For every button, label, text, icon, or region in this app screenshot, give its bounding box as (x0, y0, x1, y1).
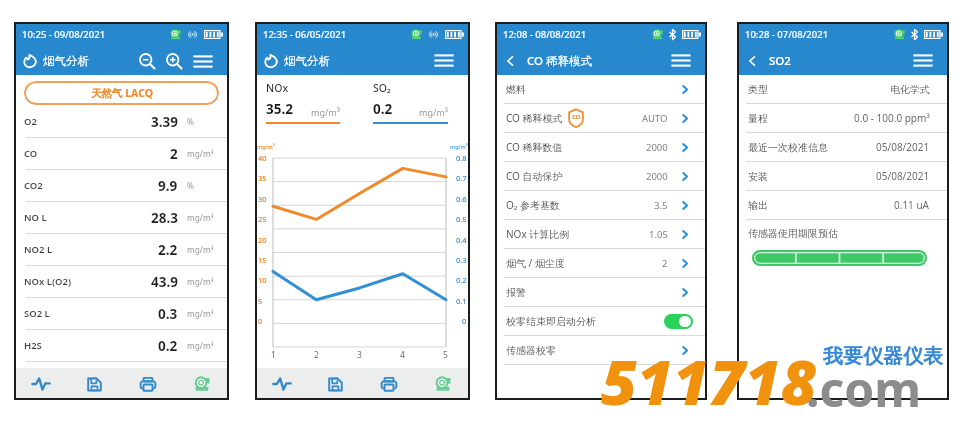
staticText: 0.2 (158, 337, 178, 355)
button[interactable]: NO2 L (14, 234, 229, 266)
button[interactable]: Print (121, 368, 175, 400)
staticText: 0.7 (456, 173, 467, 183)
button[interactable]: Trend (255, 368, 308, 400)
staticText: mg/m³ (450, 143, 468, 150)
button[interactable]: Sensor (175, 368, 229, 400)
button[interactable]: Sensor (416, 368, 470, 400)
button[interactable]: 传感器校零 (495, 336, 707, 365)
button[interactable]: CO 稀释模式 (495, 104, 707, 133)
staticText: mg/m³ (187, 212, 214, 223)
button[interactable]: Save (67, 368, 121, 400)
button[interactable]: Menu (913, 53, 933, 68)
staticText: 2 (314, 349, 319, 361)
button[interactable]: H2S (14, 330, 229, 362)
staticText: NOx L(O2) (24, 275, 72, 288)
button[interactable]: Save (308, 368, 362, 400)
button[interactable]: Menu (193, 54, 213, 69)
staticText: % (187, 180, 194, 191)
staticText: O2 (24, 115, 37, 128)
staticText: 30 (258, 194, 267, 204)
staticText: CO 自动保护 (506, 169, 563, 183)
staticText: 烟气 / 烟尘度 (506, 256, 565, 270)
staticText: CO 稀释模式 (506, 111, 563, 125)
staticText: 0 (258, 316, 263, 326)
button[interactable]: Menu (434, 53, 454, 68)
staticText: 35 (258, 173, 267, 183)
button[interactable]: Print (362, 368, 416, 400)
staticText: 10 (258, 275, 267, 285)
staticText: 5 (258, 296, 263, 306)
staticText: 0.3 (456, 255, 467, 265)
button[interactable]: 类型 (737, 75, 949, 104)
button[interactable]: 量程 (737, 104, 949, 133)
staticText: 0.5 (456, 214, 467, 224)
button[interactable]: Zoom in (166, 53, 182, 69)
staticText: 05/08/2021 (876, 169, 930, 183)
button[interactable]: CO2 (14, 170, 229, 202)
button[interactable]: O2 (14, 106, 229, 138)
staticText: AUTO (642, 112, 668, 125)
staticText: .com (806, 356, 922, 421)
button[interactable]: Menu (671, 53, 691, 68)
staticText: 0 (462, 316, 467, 326)
staticText: mg/m³ (311, 106, 340, 118)
button[interactable]: Back (746, 55, 758, 67)
button[interactable]: 烟气 / 烟尘度 (495, 249, 707, 278)
staticText: 烟气分析 (284, 54, 330, 68)
button[interactable]: 天然气 LACQ (24, 81, 219, 105)
staticText: 烟气分析 (43, 54, 89, 68)
button[interactable]: Back (504, 55, 516, 67)
staticText: mg/m³ (419, 106, 448, 118)
staticText: 最近一次校准信息 (748, 141, 828, 154)
staticText: SO2 L (24, 307, 50, 320)
button[interactable]: O₂ 参考基数 (495, 191, 707, 220)
staticText: 3.39 (151, 113, 178, 131)
staticText: 0.6 (456, 194, 467, 204)
staticText: CO2 (24, 179, 43, 192)
staticText: 0.8 (456, 153, 467, 163)
staticText: 15 (258, 255, 267, 265)
staticText: 1 (271, 349, 276, 361)
staticText: 25 (258, 214, 267, 224)
staticText: CO 稀释模式 (527, 53, 593, 69)
staticText: 0.11 uA (894, 198, 930, 212)
staticText: 2 (170, 145, 178, 163)
button[interactable]: 安装 (737, 162, 949, 191)
staticText: 1.05 (649, 228, 668, 241)
button[interactable]: 最近一次校准信息 (737, 133, 949, 162)
staticText: 28.3 (151, 209, 178, 227)
staticText: mg/m³ (187, 148, 214, 159)
staticText: 量程 (748, 112, 768, 125)
button[interactable]: 输出 (737, 191, 949, 220)
staticText: 传感器使用期限预估 (748, 227, 838, 240)
staticText: mg/m³ (187, 308, 214, 319)
button[interactable]: NO L (14, 202, 229, 234)
button[interactable]: CO 自动保护 (495, 162, 707, 191)
button[interactable]: Zoom out (139, 53, 155, 69)
staticText: 12:08 - 08/08/2021 (503, 28, 587, 41)
button[interactable]: 校零结束即启动分析 (495, 307, 707, 336)
staticText: 43.9 (151, 273, 178, 291)
staticText: O₂ 参考基数 (506, 198, 560, 212)
staticText: NO L (24, 211, 47, 224)
staticText: 12:35 - 06/05/2021 (263, 28, 347, 41)
button[interactable]: 报警 (495, 278, 707, 307)
button[interactable]: Trend (14, 368, 67, 400)
staticText: 10:25 - 09/08/2021 (22, 28, 106, 41)
staticText: 天然气 LACQ (91, 86, 153, 100)
staticText: NOx (266, 81, 289, 95)
staticText: 0.1 (456, 296, 467, 306)
button[interactable]: SO2 L (14, 298, 229, 330)
staticText: CO (572, 113, 581, 121)
staticText: 传感器校零 (506, 344, 556, 357)
staticText: H2S (24, 339, 42, 352)
button[interactable]: NOx 计算比例 (495, 220, 707, 249)
staticText: 校零结束即启动分析 (506, 315, 596, 328)
staticText: 35.2 (266, 100, 293, 118)
button[interactable]: NOx L(O2) (14, 266, 229, 298)
staticText: mg/m³ (187, 276, 214, 287)
button[interactable]: 燃料 (495, 75, 707, 104)
staticText: 9.9 (158, 177, 178, 195)
button[interactable]: CO 稀释数值 (495, 133, 707, 162)
button[interactable]: CO (14, 138, 229, 170)
